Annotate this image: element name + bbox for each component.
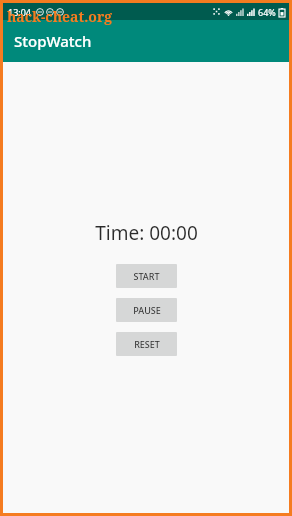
button[interactable]: RESET: [116, 332, 177, 356]
staticText: StopWatch: [14, 31, 92, 51]
staticText: hack-cheat.org: [7, 7, 113, 26]
staticText: START: [133, 270, 160, 282]
staticText: 64%: [258, 6, 276, 18]
button[interactable]: START: [116, 264, 177, 288]
staticText: Time: 00:00: [95, 220, 198, 246]
staticText: 13:04: [8, 6, 32, 18]
staticText: RESET: [134, 338, 160, 350]
button[interactable]: PAUSE: [116, 298, 177, 322]
staticText: PAUSE: [133, 304, 161, 316]
